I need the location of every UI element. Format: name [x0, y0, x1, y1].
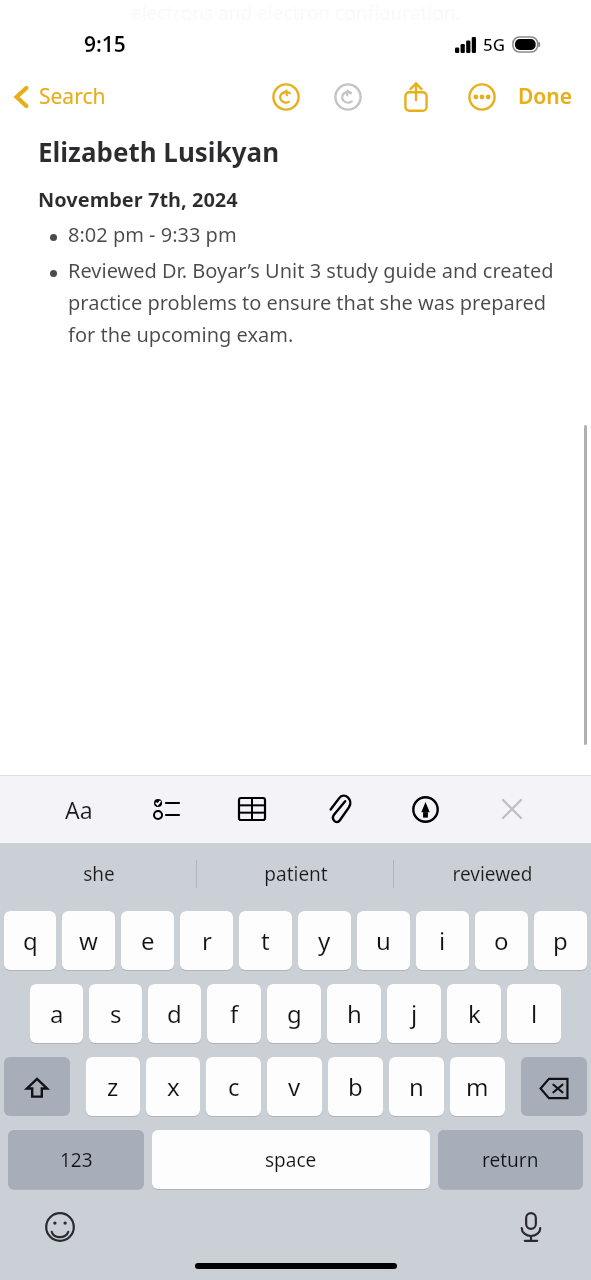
button[interactable]: Close: [489, 786, 535, 832]
staticText: f: [230, 997, 239, 1030]
button[interactable]: Shift: [4, 1057, 70, 1119]
button[interactable]: k: [447, 984, 501, 1046]
button[interactable]: z: [86, 1057, 140, 1119]
staticText: space: [265, 1147, 317, 1173]
staticText: c: [228, 1070, 240, 1103]
button[interactable]: Undo: [264, 75, 308, 119]
staticText: patient: [264, 861, 328, 887]
button[interactable]: she: [0, 843, 197, 905]
button[interactable]: h: [327, 984, 381, 1046]
staticText: i: [439, 924, 446, 957]
button[interactable]: w: [62, 911, 115, 973]
staticText: return: [482, 1147, 539, 1173]
staticText: Elizabeth Lusikyan: [38, 134, 280, 169]
button[interactable]: return: [438, 1130, 583, 1192]
staticText: x: [167, 1070, 180, 1103]
staticText: p: [553, 924, 568, 957]
button[interactable]: q: [4, 911, 56, 973]
button[interactable]: e: [121, 911, 174, 973]
button[interactable]: Done: [512, 74, 579, 119]
button[interactable]: patient: [197, 843, 394, 905]
button[interactable]: i: [416, 911, 469, 973]
staticText: November 7th, 2024: [38, 186, 238, 213]
button[interactable]: Aa: [56, 786, 102, 832]
button[interactable]: y: [298, 911, 351, 973]
button[interactable]: reviewed: [394, 843, 591, 905]
button[interactable]: b: [328, 1057, 383, 1119]
button[interactable]: Search: [0, 76, 116, 117]
button[interactable]: m: [450, 1057, 505, 1119]
button[interactable]: c: [206, 1057, 261, 1119]
button[interactable]: g: [267, 984, 321, 1046]
button[interactable]: o: [475, 911, 528, 973]
button[interactable]: More: [460, 75, 504, 119]
button[interactable]: t: [239, 911, 292, 973]
staticText: r: [202, 924, 212, 957]
staticText: 123: [60, 1147, 93, 1173]
staticText: d: [167, 997, 182, 1030]
staticText: Search: [39, 82, 106, 111]
staticText: a: [50, 997, 64, 1030]
button[interactable]: Markup: [402, 786, 448, 832]
staticText: h: [347, 997, 362, 1030]
staticText: 8:02 pm - 9:33 pm: [68, 221, 237, 248]
button[interactable]: p: [534, 911, 587, 973]
staticText: t: [261, 924, 270, 957]
button[interactable]: Checklist: [143, 786, 189, 832]
staticText: o: [494, 924, 509, 957]
staticText: q: [23, 924, 38, 957]
staticText: j: [411, 997, 418, 1030]
button[interactable]: x: [146, 1057, 200, 1119]
staticText: she: [83, 861, 115, 887]
button[interactable]: Share: [394, 75, 438, 119]
staticText: Reviewed Dr. Boyar’s Unit 3 study guide …: [68, 257, 567, 348]
staticText: y: [318, 924, 331, 957]
button[interactable]: Backspace: [521, 1057, 587, 1119]
staticText: n: [409, 1070, 424, 1103]
staticText: z: [107, 1070, 119, 1103]
button[interactable]: s: [89, 984, 142, 1046]
button[interactable]: u: [357, 911, 410, 973]
staticText: s: [110, 997, 122, 1030]
button[interactable]: f: [207, 984, 261, 1046]
button[interactable]: r: [180, 911, 233, 973]
button[interactable]: Attach: [316, 786, 362, 832]
button[interactable]: 123: [8, 1130, 144, 1192]
staticText: m: [466, 1070, 489, 1103]
staticText: w: [79, 924, 98, 957]
button[interactable]: v: [267, 1057, 322, 1119]
staticText: reviewed: [452, 861, 533, 887]
button[interactable]: n: [389, 1057, 444, 1119]
button[interactable]: a: [30, 984, 83, 1046]
staticText: b: [348, 1070, 363, 1103]
staticText: v: [288, 1070, 301, 1103]
staticText: 9:15: [84, 30, 126, 59]
staticText: 5G: [483, 33, 506, 56]
button[interactable]: Table: [229, 786, 275, 832]
staticText: e: [141, 924, 155, 957]
staticText: k: [468, 997, 481, 1030]
button[interactable]: l: [507, 984, 561, 1046]
staticText: g: [287, 997, 302, 1030]
staticText: u: [376, 924, 391, 957]
button[interactable]: Dictate: [511, 1207, 551, 1247]
staticText: Done: [518, 82, 573, 111]
button[interactable]: space: [152, 1130, 430, 1192]
staticText: Aa: [65, 794, 93, 825]
button[interactable]: Emoji: [40, 1207, 80, 1247]
staticText: l: [531, 997, 538, 1030]
button[interactable]: Redo: [326, 75, 370, 119]
button[interactable]: j: [387, 984, 441, 1046]
button[interactable]: d: [148, 984, 201, 1046]
